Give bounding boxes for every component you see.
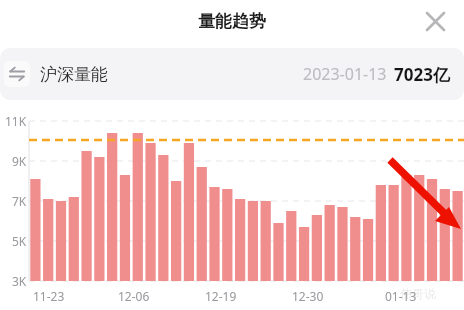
staticText: 12-06	[118, 288, 150, 304]
button[interactable]: 沪深量能	[0, 48, 464, 100]
staticText: 12-30	[292, 288, 324, 304]
staticText: 01-13	[385, 288, 417, 304]
staticText: 伟哥说	[400, 286, 436, 301]
staticText: 量能趋势	[198, 11, 266, 32]
staticText: 11K	[5, 113, 27, 129]
staticText: 11-23	[33, 288, 65, 304]
staticText: 7023亿	[394, 63, 450, 86]
staticText: 7K	[12, 193, 27, 209]
button[interactable]: Close	[418, 4, 452, 38]
staticText: 2023-01-13	[303, 63, 387, 85]
staticText: 沪深量能	[40, 64, 108, 85]
staticText: 5K	[12, 233, 27, 249]
staticText: 9K	[12, 153, 27, 169]
staticText: 3K	[12, 273, 27, 289]
staticText: 12-19	[205, 288, 237, 304]
